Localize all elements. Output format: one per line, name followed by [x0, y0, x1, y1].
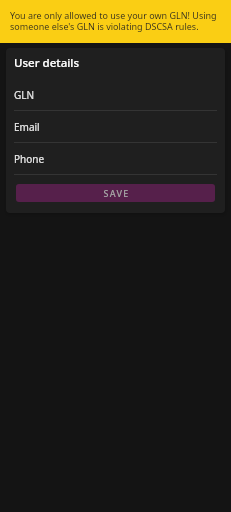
staticText: You are only allowed to use your own GLN… [10, 9, 221, 32]
button[interactable]: Phone [14, 143, 217, 175]
button[interactable]: Email [14, 111, 217, 143]
button[interactable]: SAVE [16, 184, 215, 202]
button[interactable]: GLN [14, 79, 217, 111]
staticText: User details [14, 55, 80, 71]
staticText: SAVE [103, 187, 130, 199]
staticText: GLN [14, 88, 35, 102]
staticText: Email [14, 120, 40, 134]
staticText: Phone [14, 152, 45, 166]
